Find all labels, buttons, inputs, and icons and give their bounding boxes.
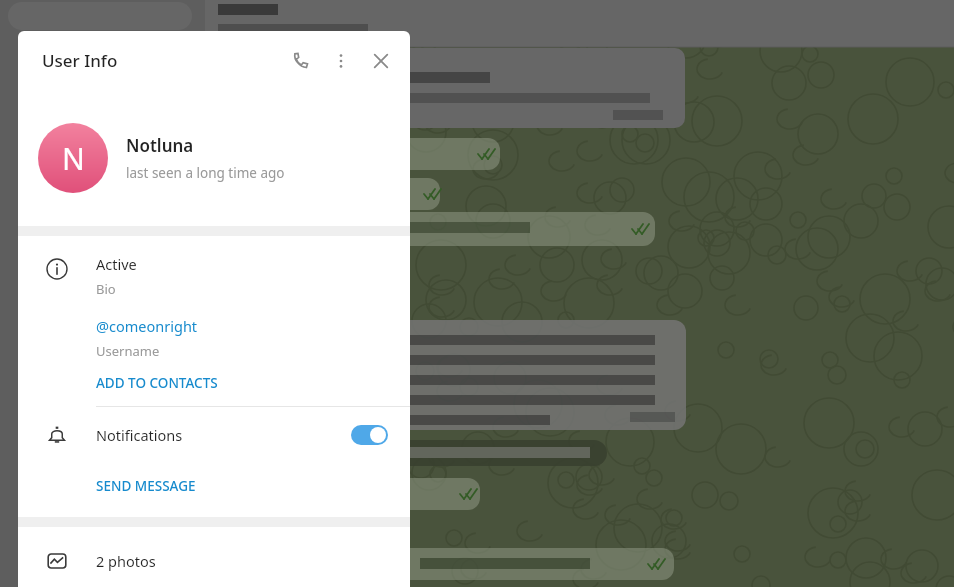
staticText: User Info (42, 49, 118, 72)
staticText: N (62, 138, 85, 179)
staticText: @comeonright (96, 316, 198, 336)
button[interactable]: ADD TO CONTACTS (96, 360, 410, 406)
button[interactable]: Call (286, 46, 316, 76)
button[interactable]: 2 photos (18, 527, 410, 587)
staticText: Bio (96, 280, 116, 298)
button[interactable]: SEND MESSAGE (18, 463, 410, 509)
staticText: ADD TO CONTACTS (96, 374, 218, 392)
staticText: Notifications (96, 425, 351, 445)
button[interactable]: Close (366, 46, 396, 76)
staticText: SEND MESSAGE (96, 477, 196, 495)
staticText: Notluna (126, 134, 194, 157)
staticText: Username (96, 342, 160, 360)
button[interactable]: More options (326, 46, 356, 76)
button[interactable]: N (18, 90, 410, 226)
button[interactable]: Notifications toggle (351, 425, 388, 445)
button[interactable]: Active (96, 236, 410, 304)
button[interactable]: @comeonright (96, 316, 410, 360)
button[interactable]: Notifications (18, 407, 410, 463)
staticText: last seen a long time ago (126, 164, 285, 182)
staticText: Active (96, 254, 137, 274)
staticText: 2 photos (96, 551, 156, 571)
